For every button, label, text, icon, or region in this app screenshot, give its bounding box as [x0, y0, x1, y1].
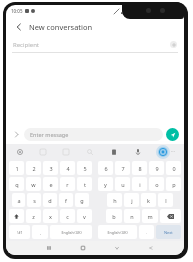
staticText: 1	[15, 165, 19, 172]
button[interactable]: 6	[98, 161, 113, 175]
staticText: 9	[155, 165, 159, 172]
button[interactable]: u	[115, 177, 130, 191]
button[interactable]: e	[43, 177, 58, 191]
staticText: a	[17, 197, 21, 204]
button[interactable]: q	[9, 177, 24, 191]
button[interactable]: Key	[160, 209, 181, 223]
staticText: x	[49, 213, 52, 220]
staticText: 7	[121, 165, 125, 172]
staticText: u	[121, 181, 125, 188]
button[interactable]: GIF	[60, 146, 71, 157]
staticText: g	[80, 197, 84, 204]
button[interactable]: Keyboard settings	[156, 145, 170, 159]
button[interactable]: n	[124, 209, 140, 223]
button[interactable]: h	[107, 193, 122, 207]
staticText: 0	[172, 165, 176, 172]
button[interactable]: Back	[111, 242, 123, 254]
button[interactable]: b	[106, 209, 122, 223]
staticText: ,	[40, 230, 41, 235]
button[interactable]: English (UK)	[50, 225, 92, 239]
staticText: z	[32, 213, 35, 220]
staticText: d	[48, 197, 52, 204]
button[interactable]: 9	[149, 161, 164, 175]
staticText: 10:05	[11, 8, 23, 14]
button[interactable]: g	[75, 193, 89, 207]
staticText: m	[147, 213, 153, 220]
button[interactable]: f	[59, 193, 73, 207]
button[interactable]: s	[27, 193, 41, 207]
staticText: English (UK)	[107, 230, 128, 235]
button[interactable]: i	[132, 177, 147, 191]
staticText: e	[49, 181, 53, 188]
staticText: h	[113, 197, 117, 204]
staticText: q	[15, 181, 19, 188]
button[interactable]: d	[43, 193, 57, 207]
button[interactable]: c	[60, 209, 75, 223]
staticText: 5	[83, 165, 87, 172]
staticText: r	[66, 181, 69, 188]
button[interactable]: Search	[84, 146, 95, 157]
button[interactable]: Key	[9, 209, 24, 223]
staticText: New conversation	[29, 22, 93, 32]
button[interactable]: Clipboard	[108, 146, 119, 157]
staticText: ···	[171, 148, 176, 155]
button[interactable]: Send	[166, 128, 179, 141]
button[interactable]: Home	[77, 242, 89, 254]
button[interactable]: 8	[132, 161, 147, 175]
staticText: f	[65, 197, 67, 204]
staticText: n	[130, 213, 134, 220]
staticText: !#1	[17, 230, 23, 235]
button[interactable]: Hide keyboard	[145, 242, 157, 254]
button[interactable]: 2	[26, 161, 41, 175]
button[interactable]: x	[43, 209, 58, 223]
staticText: l	[165, 197, 167, 204]
button[interactable]: y	[98, 177, 113, 191]
button[interactable]: a	[12, 193, 25, 207]
button[interactable]: 1	[9, 161, 24, 175]
staticText: 4	[66, 165, 70, 172]
staticText: 3	[49, 165, 53, 172]
button[interactable]: v	[77, 209, 92, 223]
button[interactable]: t	[77, 177, 92, 191]
staticText: y	[104, 181, 107, 188]
button[interactable]: 3	[43, 161, 58, 175]
button[interactable]: k	[141, 193, 156, 207]
staticText: j	[131, 197, 133, 204]
button[interactable]: Back	[13, 21, 25, 33]
staticText: Enter message	[30, 131, 69, 138]
staticText: i	[139, 181, 141, 188]
staticText: o	[155, 181, 159, 188]
staticText: w	[31, 181, 36, 188]
button[interactable]: r	[60, 177, 75, 191]
staticText: 6	[104, 165, 108, 172]
button[interactable]: 4	[60, 161, 75, 175]
button[interactable]: w	[26, 177, 41, 191]
button[interactable]: Attach	[11, 129, 22, 140]
staticText: Next	[164, 230, 173, 235]
staticText: 2	[32, 165, 36, 172]
button[interactable]: 7	[115, 161, 130, 175]
button[interactable]: Voice input	[132, 146, 143, 157]
staticText: s	[33, 197, 36, 204]
button[interactable]: j	[124, 193, 139, 207]
staticText: k	[147, 197, 150, 204]
button[interactable]: 0	[166, 161, 181, 175]
button[interactable]: !#1	[9, 225, 30, 239]
button[interactable]: m	[142, 209, 158, 223]
button[interactable]: Recipient	[13, 37, 177, 52]
button[interactable]: 5	[77, 161, 92, 175]
button[interactable]: z	[26, 209, 41, 223]
button[interactable]: Stickers	[37, 146, 48, 157]
button[interactable]: l	[158, 193, 173, 207]
button[interactable]: Next	[156, 225, 181, 239]
button[interactable]: Enter message	[24, 128, 163, 141]
other: Add recipient	[170, 41, 177, 48]
staticText: Recipient	[13, 41, 40, 49]
button[interactable]: o	[149, 177, 164, 191]
button[interactable]: Recents	[43, 242, 55, 254]
button[interactable]: English (UK)	[98, 225, 137, 239]
button[interactable]: p	[166, 177, 181, 191]
button[interactable]: Keyboard settings	[14, 146, 25, 157]
